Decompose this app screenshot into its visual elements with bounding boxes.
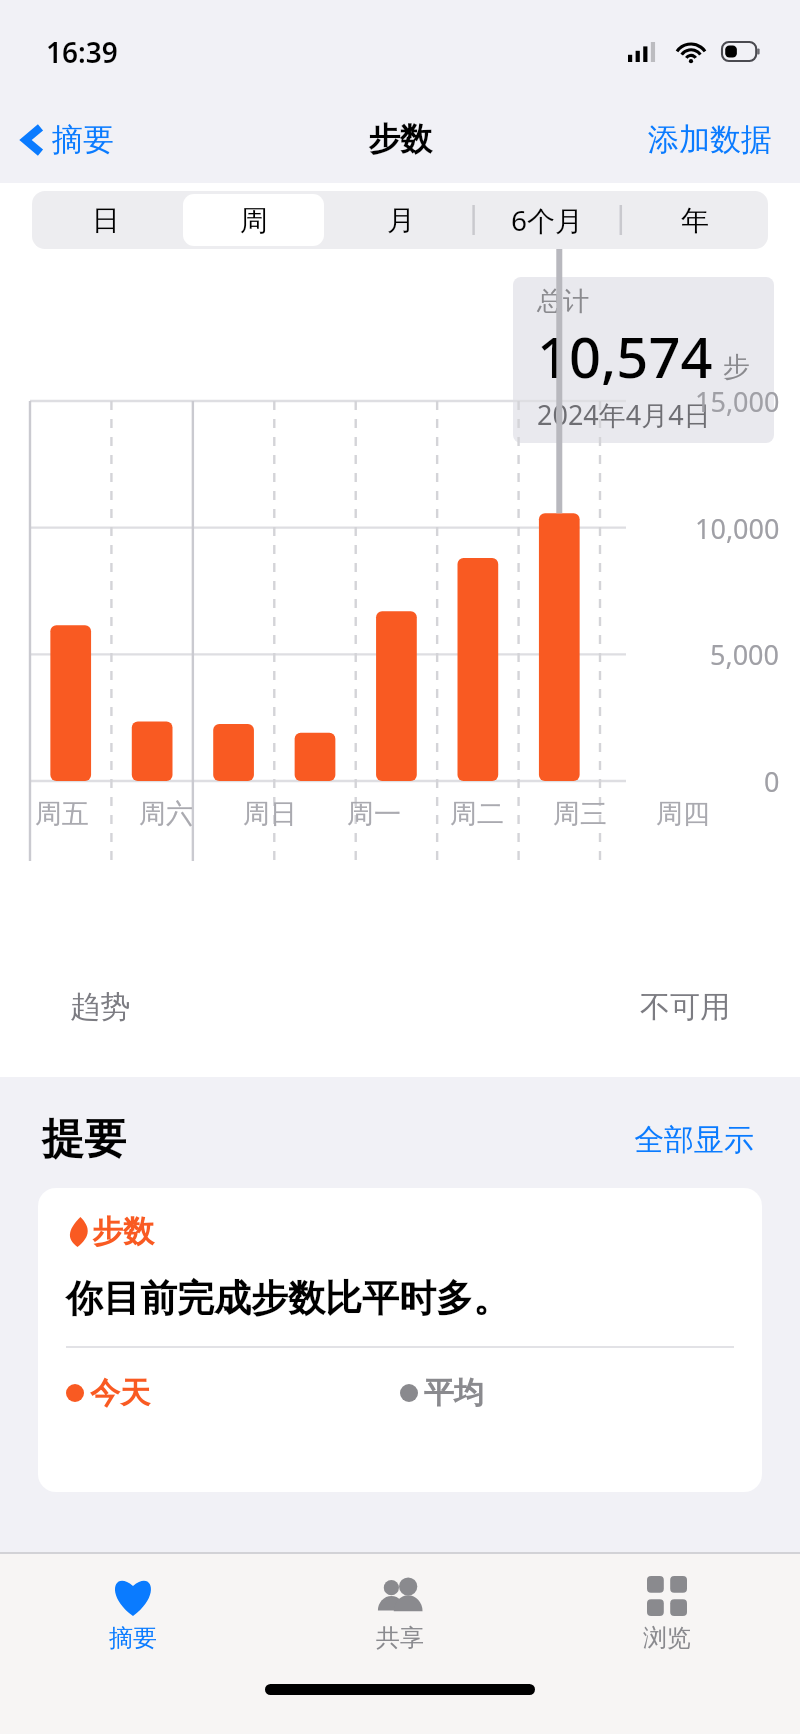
staticText: 周日 — [243, 797, 297, 831]
button[interactable]: 步数 — [38, 1188, 762, 1492]
button[interactable]: 摘要 — [16, 112, 120, 167]
staticText: 浏览 — [643, 1623, 691, 1653]
staticText: 不可用 — [640, 988, 730, 1026]
staticText: 10,000 — [695, 510, 780, 547]
staticText: 周四 — [656, 797, 710, 831]
button[interactable]: 6个月 — [477, 194, 618, 246]
staticText: 平均 — [424, 1374, 484, 1412]
staticText: 周三 — [553, 797, 607, 831]
staticText: 步数 — [368, 119, 432, 159]
button[interactable]: 摘要 — [0, 1554, 266, 1672]
button[interactable]: 浏览 — [533, 1554, 800, 1672]
staticText: 你目前完成步数比平时多。 — [66, 1275, 510, 1322]
staticText: 摘要 — [109, 1623, 157, 1653]
staticText: 摘要 — [52, 120, 114, 159]
button[interactable]: 共享 — [266, 1554, 533, 1672]
button[interactable]: 全部显示 — [630, 1117, 758, 1163]
staticText: 16:39 — [46, 33, 118, 71]
staticText: 日 — [92, 203, 120, 238]
staticText: 今天 — [90, 1374, 150, 1412]
staticText: 步 — [723, 350, 750, 384]
staticText: 5,000 — [710, 636, 780, 673]
button[interactable]: 日 — [35, 194, 177, 246]
staticText: 共享 — [376, 1623, 424, 1653]
staticText: 15,000 — [695, 383, 780, 420]
staticText: 2024年4月4日 — [537, 396, 711, 433]
staticText: 提要 — [42, 1113, 126, 1166]
staticText: 年 — [681, 203, 709, 238]
staticText: 月 — [387, 203, 415, 238]
staticText: 周二 — [450, 797, 504, 831]
staticText: 0 — [764, 763, 780, 800]
staticText: 周六 — [139, 797, 193, 831]
button[interactable]: 年 — [624, 194, 765, 246]
button[interactable]: 添加数据 — [642, 114, 778, 165]
staticText: 趋势 — [70, 988, 130, 1026]
staticText: 6个月 — [511, 201, 584, 239]
button[interactable]: 月 — [330, 194, 471, 246]
staticText: 总计 — [537, 285, 589, 318]
staticText: 周五 — [35, 797, 89, 831]
staticText: 周 — [240, 203, 268, 238]
button[interactable]: 周 — [183, 194, 324, 246]
button[interactable]: 趋势 — [40, 961, 760, 1053]
staticText: 10,574 — [537, 318, 713, 394]
staticText: 步数 — [92, 1212, 154, 1251]
staticText: 周一 — [347, 797, 401, 831]
